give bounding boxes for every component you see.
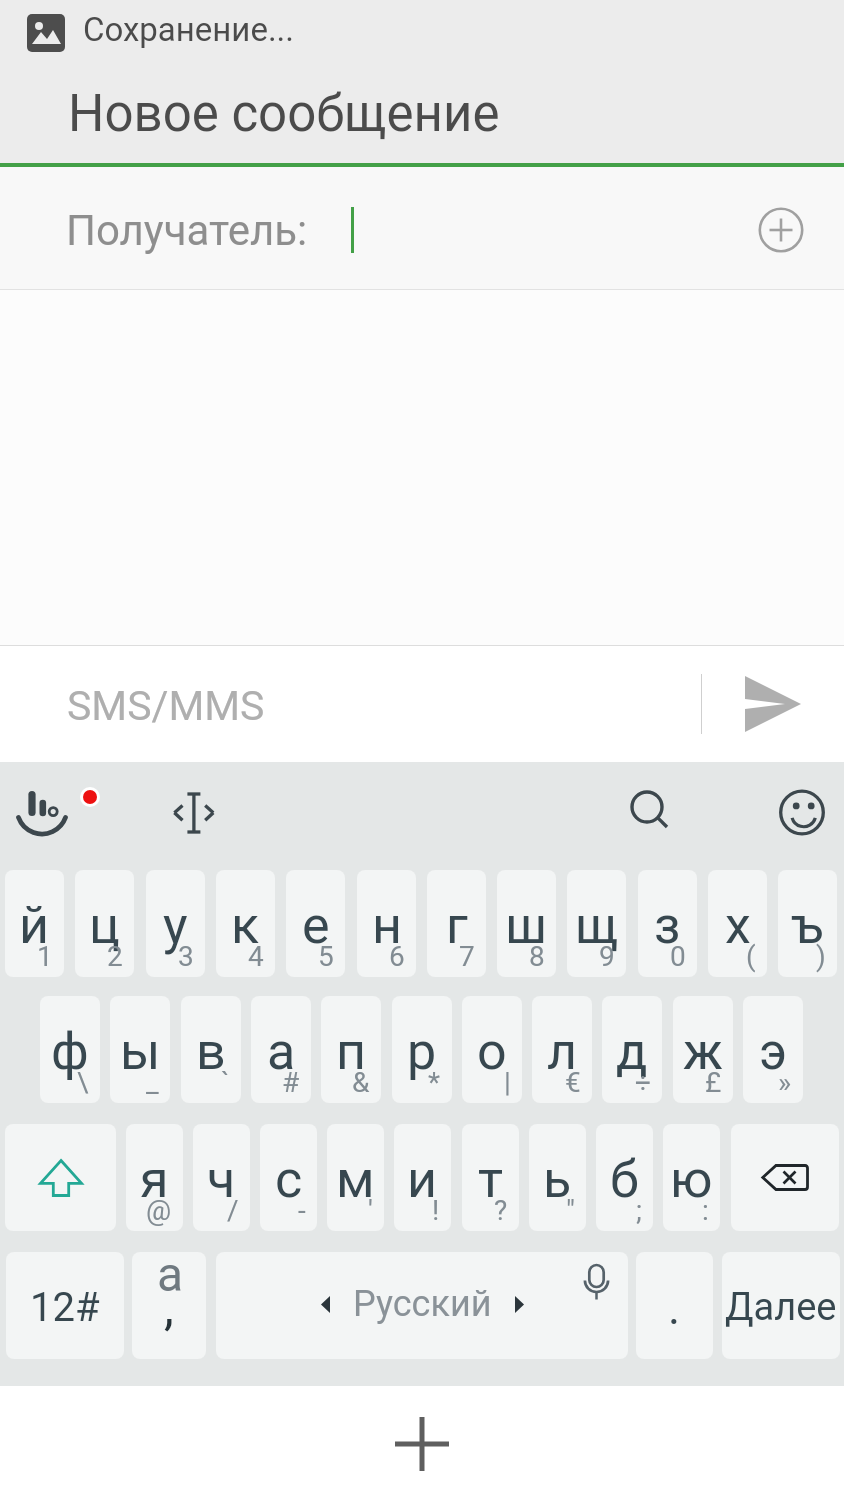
staticText: р [407, 1021, 437, 1082]
staticText: ' [368, 1194, 373, 1227]
button[interactable]: Далее [722, 1252, 840, 1359]
staticText: & [352, 1066, 370, 1099]
staticText: » [778, 1066, 792, 1099]
staticText: 3 [178, 940, 194, 973]
button[interactable]: т [462, 1124, 519, 1231]
staticText: ь [543, 1149, 572, 1210]
button[interactable]: г [427, 870, 486, 977]
button[interactable]: а [251, 996, 311, 1103]
button[interactable]: о [462, 996, 522, 1103]
staticText: 2 [107, 940, 123, 973]
staticText: 4 [248, 940, 264, 973]
staticText: Русский [353, 1283, 492, 1325]
staticText: * [428, 1066, 441, 1099]
staticText: / [227, 1194, 239, 1227]
button[interactable] [170, 792, 215, 833]
staticText: а [267, 1021, 296, 1082]
button[interactable]: р [392, 996, 452, 1103]
staticText: ш [505, 895, 548, 956]
staticText: | [504, 1066, 511, 1099]
staticText: с [275, 1149, 303, 1210]
button[interactable]: Русский [216, 1252, 628, 1359]
staticText: ы [120, 1021, 161, 1082]
staticText: : [702, 1194, 709, 1227]
staticText: е [302, 895, 330, 956]
staticText: " [566, 1194, 575, 1227]
button[interactable]: ю [663, 1124, 720, 1231]
button[interactable]: а [132, 1252, 206, 1359]
staticText: ж [683, 1021, 723, 1082]
button[interactable]: л [532, 996, 592, 1103]
button[interactable]: ш [497, 870, 556, 977]
staticText: £ [705, 1066, 722, 1099]
button[interactable]: 12# [6, 1252, 124, 1359]
staticText: и [407, 1149, 438, 1210]
button[interactable]: х [708, 870, 767, 977]
button[interactable] [395, 1417, 449, 1471]
button[interactable]: ч [193, 1124, 250, 1231]
staticText: ? [494, 1194, 508, 1227]
button[interactable] [628, 789, 672, 833]
button[interactable]: ф [40, 996, 100, 1103]
button[interactable]: ъ [778, 870, 837, 977]
button[interactable] [743, 674, 803, 734]
button[interactable]: й [5, 870, 64, 977]
staticText: ч [207, 1149, 236, 1210]
button[interactable]: у [146, 870, 205, 977]
staticText: _ [146, 1066, 159, 1099]
button[interactable]: ь [529, 1124, 586, 1231]
staticText: н [372, 895, 402, 956]
staticText: 12# [30, 1284, 100, 1331]
button[interactable]: ц [75, 870, 134, 977]
button[interactable]: . [636, 1252, 713, 1359]
button[interactable] [17, 784, 67, 834]
staticText: п [336, 1021, 367, 1082]
button[interactable]: д [602, 996, 662, 1103]
button[interactable] [5, 1124, 116, 1231]
staticText: Далее [725, 1285, 837, 1330]
staticText: г [446, 895, 468, 956]
staticText: ! [432, 1194, 440, 1227]
button[interactable]: ы [110, 996, 170, 1103]
staticText: о [477, 1021, 507, 1082]
button[interactable]: з [638, 870, 697, 977]
button[interactable]: и [394, 1124, 451, 1231]
button[interactable]: м [327, 1124, 384, 1231]
button[interactable]: б [596, 1124, 653, 1231]
staticText: 6 [389, 940, 405, 973]
staticText: й [19, 895, 50, 956]
button[interactable]: э [743, 996, 803, 1103]
staticText: ÷ [635, 1066, 651, 1099]
staticText: в [196, 1021, 226, 1082]
staticText: к [231, 895, 260, 956]
button[interactable]: щ [567, 870, 626, 977]
button[interactable]: е [286, 870, 345, 977]
staticText: ц [89, 895, 120, 956]
staticText: Сохранение... [83, 10, 295, 49]
button[interactable]: ж [673, 996, 733, 1103]
button[interactable] [758, 207, 804, 253]
staticText: Новое сообщение [68, 84, 500, 144]
staticText: ; [636, 1194, 642, 1227]
button[interactable]: в [181, 996, 241, 1103]
button[interactable] [731, 1124, 839, 1231]
staticText: ( [746, 940, 756, 973]
button[interactable]: п [321, 996, 381, 1103]
staticText: ) [816, 940, 826, 973]
staticText: , [164, 1278, 174, 1337]
staticText: . [668, 1281, 681, 1335]
button[interactable]: к [216, 870, 275, 977]
button[interactable]: с [260, 1124, 317, 1231]
button[interactable] [779, 790, 825, 836]
staticText: х [725, 895, 751, 956]
staticText: у [163, 895, 188, 956]
button[interactable]: я [126, 1124, 183, 1231]
staticText: я [140, 1149, 169, 1210]
staticText: 8 [529, 940, 545, 973]
button[interactable]: Получатель: [0, 167, 844, 289]
staticText: ` [221, 1066, 230, 1099]
staticText: б [610, 1149, 639, 1210]
staticText: Получатель: [66, 206, 308, 255]
button[interactable]: н [357, 870, 416, 977]
staticText: 7 [459, 940, 475, 973]
